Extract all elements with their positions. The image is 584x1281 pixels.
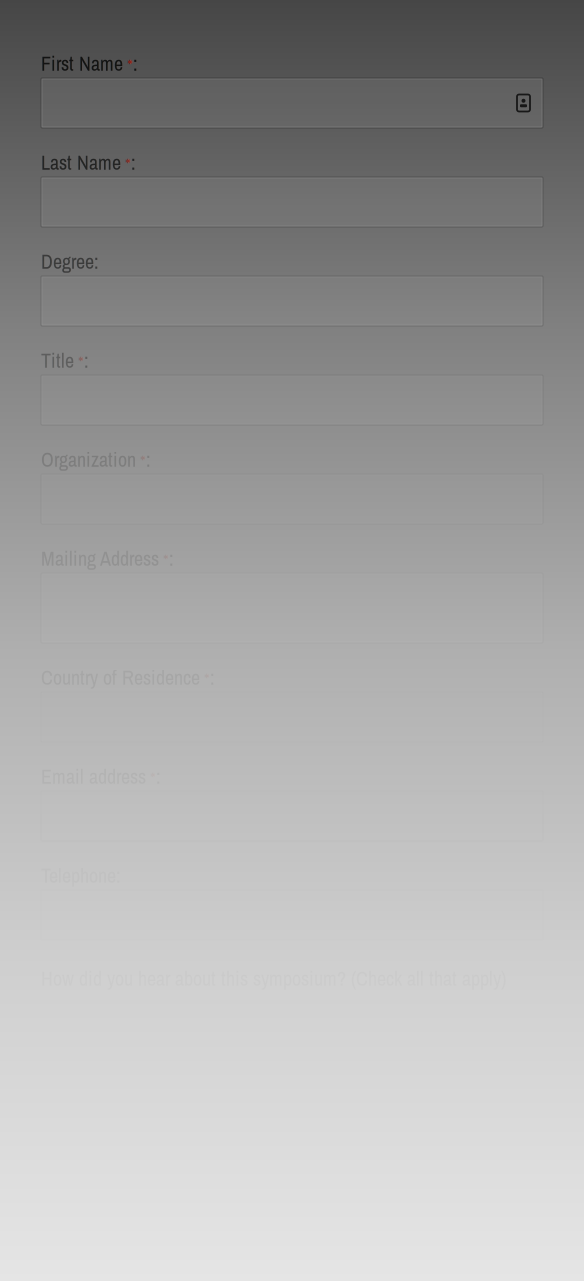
staticText: Degree [41, 248, 94, 275]
staticText: : [94, 248, 99, 275]
staticText: : [146, 446, 151, 473]
button[interactable] [41, 78, 543, 128]
staticText: Email address [41, 763, 146, 790]
staticText: First Name [41, 50, 123, 77]
staticText: : [131, 149, 136, 176]
staticText: Last Name [41, 149, 121, 176]
staticText: * [123, 53, 133, 76]
staticText: Title [41, 347, 74, 374]
staticText: * [121, 152, 131, 175]
staticText: * [74, 350, 84, 373]
staticText: : [133, 50, 138, 77]
staticText: * [136, 449, 146, 472]
staticText: Mailing Address [41, 545, 159, 572]
staticText: * [159, 548, 169, 571]
staticText: Country of Residence [41, 664, 200, 691]
staticText: Organization [41, 446, 136, 473]
button[interactable] [41, 276, 543, 326]
staticText: : [84, 347, 89, 374]
staticText: : [169, 545, 174, 572]
